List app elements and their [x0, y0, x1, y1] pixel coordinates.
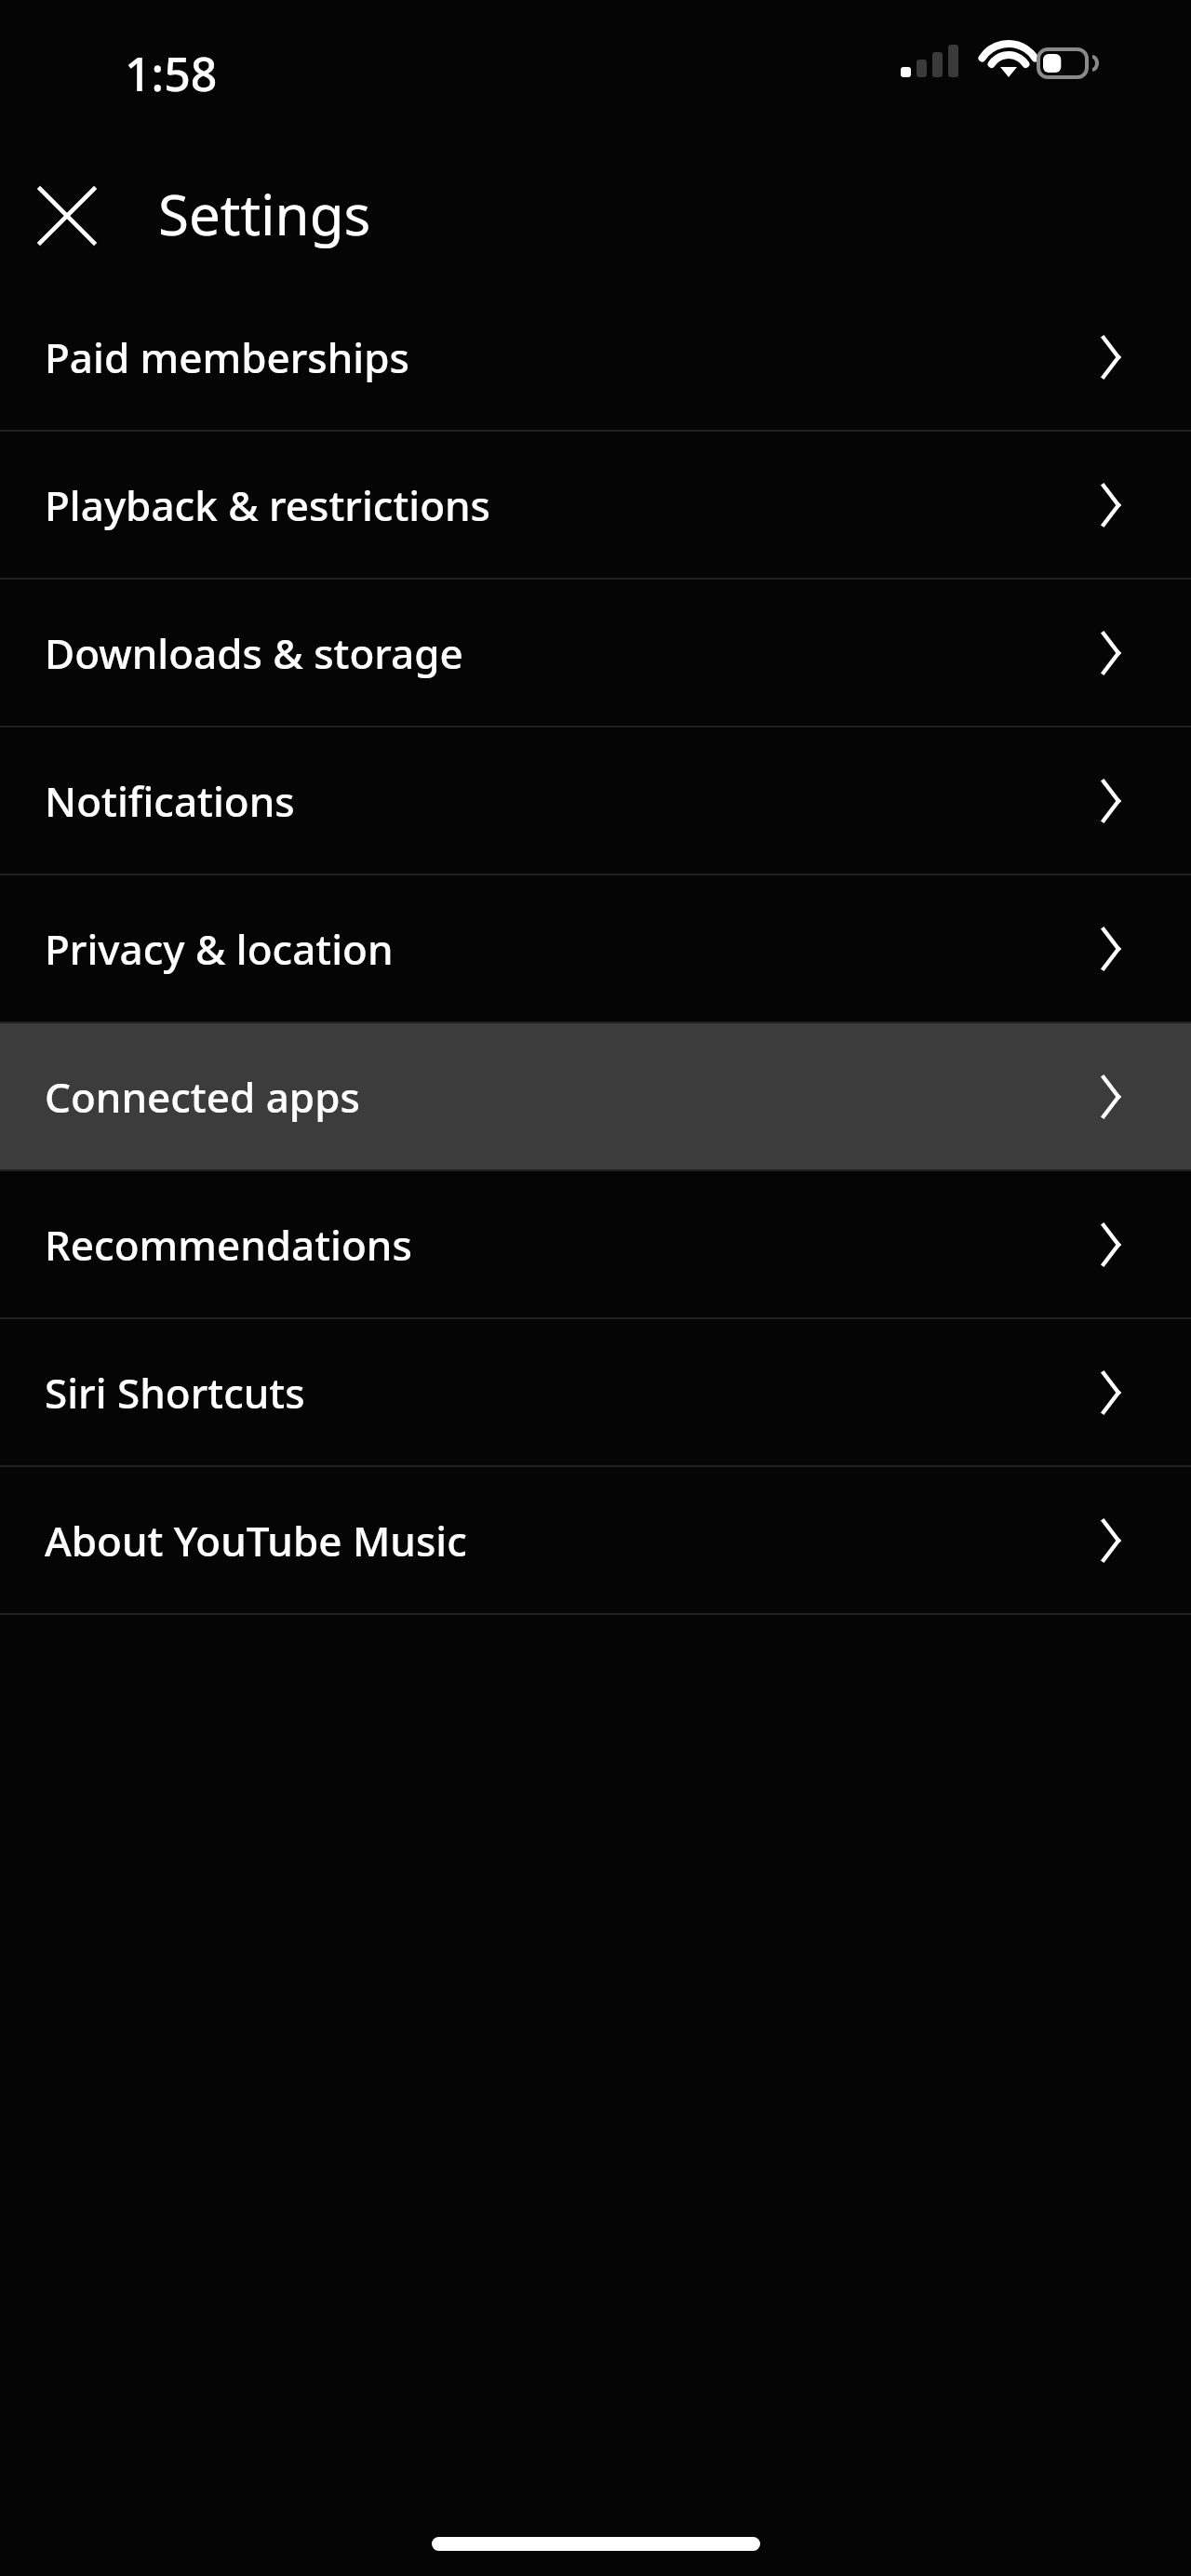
button[interactable]: Privacy & location [0, 875, 1191, 1021]
button[interactable]: Close [13, 162, 121, 270]
staticText: Downloads & storage [45, 625, 1102, 681]
staticText: Privacy & location [45, 921, 1102, 977]
button[interactable]: Siri Shortcuts [0, 1319, 1191, 1465]
staticText: About YouTube Music [45, 1513, 1102, 1568]
button[interactable]: Notifications [0, 727, 1191, 874]
staticText: Siri Shortcuts [45, 1365, 1102, 1421]
button[interactable]: Paid memberships [0, 284, 1191, 430]
staticText: Notifications [45, 773, 1102, 829]
button[interactable]: Connected apps [0, 1023, 1191, 1169]
staticText: Recommendations [45, 1217, 1102, 1273]
button[interactable]: Downloads & storage [0, 580, 1191, 726]
staticText: 1:58 [125, 42, 218, 105]
staticText: Paid memberships [45, 329, 1102, 385]
button[interactable]: About YouTube Music [0, 1467, 1191, 1613]
staticText: Playback & restrictions [45, 477, 1102, 533]
staticText: Connected apps [45, 1069, 1102, 1125]
staticText: Settings [158, 176, 371, 252]
button[interactable]: Recommendations [0, 1171, 1191, 1317]
button[interactable]: Playback & restrictions [0, 432, 1191, 578]
